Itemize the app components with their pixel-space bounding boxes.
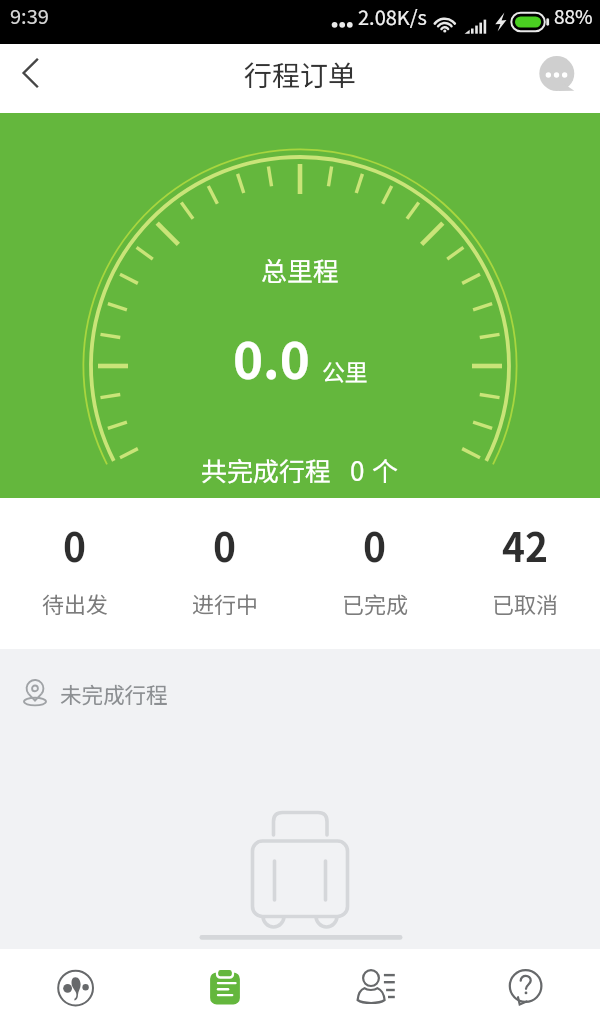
staticText: 未完成行程 [60,678,168,709]
staticText: 已取消 [492,587,559,619]
button[interactable]: Help [450,949,600,1022]
button[interactable]: Orders [150,949,300,1022]
staticText: 9:39 [10,1,49,30]
staticText: 总里程 [261,251,340,289]
staticText: 0 [63,517,87,573]
button[interactable]: 42 [450,498,600,649]
button[interactable]: 未完成行程 [0,649,600,726]
staticText: 已完成 [342,587,409,619]
staticText: 0.0 [233,320,310,394]
staticText: 进行中 [192,587,259,619]
staticText: 共完成行程 [201,451,332,489]
staticText: 公里 [322,354,368,387]
button[interactable]: 0 [0,498,150,649]
staticText: 0 [213,517,237,573]
staticText: 0 [350,451,365,489]
staticText: 2.08K/s [358,2,427,31]
button[interactable]: 0 [150,498,300,649]
staticText: 0 [363,517,387,573]
button[interactable]: Messages [542,44,600,113]
staticText: 行程订单 [244,54,357,95]
button[interactable]: Discover [0,949,150,1022]
staticText: 42 [502,517,549,573]
button[interactable]: Contacts [300,949,450,1022]
button[interactable]: Back [0,44,58,113]
staticText: 88% [554,2,593,30]
staticText: 待出发 [42,587,109,619]
button[interactable]: 0 [300,498,450,649]
staticText: 个 [372,451,399,489]
